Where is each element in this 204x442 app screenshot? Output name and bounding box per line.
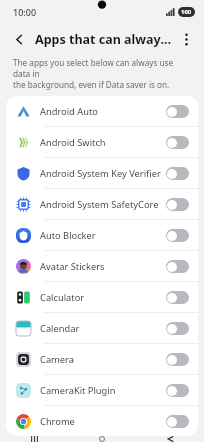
button[interactable]: Back xyxy=(8,28,30,50)
staticText: Android Auto xyxy=(40,105,166,118)
staticText: Android System Key Verifier xyxy=(40,167,166,180)
button[interactable]: Android System Key Verifier xyxy=(6,158,198,188)
button[interactable]: CameraKit Plugin xyxy=(6,375,198,405)
button[interactable]: More options xyxy=(176,29,196,49)
button[interactable]: Auto Blocker xyxy=(6,220,198,250)
button[interactable]: Android Auto xyxy=(6,96,198,126)
staticText: 100 xyxy=(181,8,192,16)
staticText: Avatar Stickers xyxy=(40,260,166,273)
button[interactable]: Camera xyxy=(6,344,198,374)
button[interactable]: Chrome xyxy=(6,406,198,436)
button[interactable]: Toggle xyxy=(166,384,189,397)
staticText: Apps that can always use… xyxy=(35,31,176,48)
button[interactable]: Toggle xyxy=(166,322,189,335)
staticText: Camera xyxy=(40,353,166,366)
button[interactable]: Home xyxy=(68,436,136,442)
staticText: Calendar xyxy=(40,322,166,335)
staticText: Calculator xyxy=(40,291,166,304)
button[interactable]: Calendar xyxy=(6,313,198,343)
button[interactable]: Android System SafetyCore xyxy=(6,189,198,219)
button[interactable]: Toggle xyxy=(166,167,189,180)
staticText: Android System SafetyCore xyxy=(40,198,166,211)
button[interactable]: Toggle xyxy=(166,105,189,118)
button[interactable]: Calculator xyxy=(6,282,198,312)
staticText: CameraKit Plugin xyxy=(40,384,166,397)
staticText: Auto Blocker xyxy=(40,229,166,242)
button[interactable]: Toggle xyxy=(166,136,189,149)
staticText: The apps you select below can always use… xyxy=(13,57,190,79)
staticText: the background, even if Data saver is on… xyxy=(13,79,170,90)
button[interactable]: Toggle xyxy=(166,229,189,242)
button[interactable]: Toggle xyxy=(166,415,189,428)
staticText: Chrome xyxy=(40,415,166,428)
button[interactable]: Toggle xyxy=(166,291,189,304)
button[interactable]: Android Switch xyxy=(6,127,198,157)
button[interactable]: Recents xyxy=(0,436,68,442)
button[interactable]: Toggle xyxy=(166,353,189,366)
button[interactable]: Avatar Stickers xyxy=(6,251,198,281)
button[interactable]: Back xyxy=(136,436,204,442)
staticText: Android Switch xyxy=(40,136,166,149)
staticText: 10:00 xyxy=(13,6,37,18)
button[interactable]: Toggle xyxy=(166,198,189,211)
button[interactable]: Toggle xyxy=(166,260,189,273)
